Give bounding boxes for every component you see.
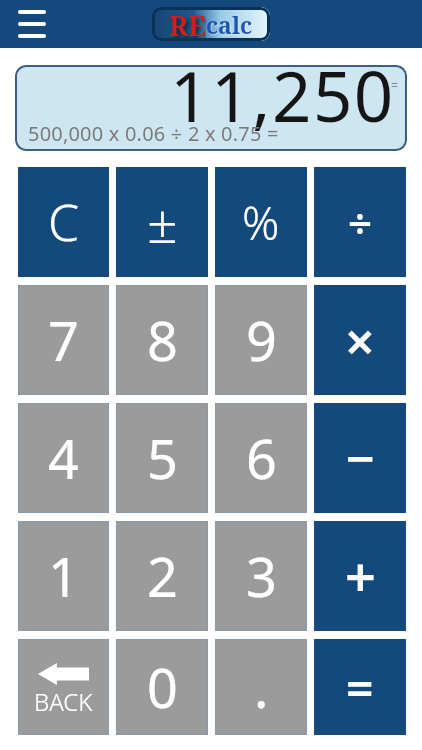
staticText: C [48, 188, 80, 256]
button[interactable]: 7 [18, 285, 109, 395]
staticText: = [346, 655, 374, 720]
staticText: calc [206, 9, 253, 40]
button[interactable]: 6 [215, 403, 307, 513]
staticText: 11,250 [170, 65, 395, 134]
staticText: . [254, 650, 269, 724]
staticText: 6 [246, 421, 277, 495]
button[interactable]: = [314, 639, 406, 735]
staticText: × [345, 305, 375, 376]
button[interactable]: BACK [18, 639, 109, 735]
button[interactable]: % [215, 167, 307, 277]
staticText: 7 [48, 303, 79, 377]
button[interactable]: ÷ [314, 167, 406, 277]
button[interactable]: 1 [18, 521, 109, 631]
button[interactable]: 4 [18, 403, 109, 513]
staticText: 5 [147, 421, 178, 495]
staticText: 1 [48, 539, 79, 613]
staticText: ÷ [348, 194, 373, 251]
staticText: − [346, 424, 375, 492]
button[interactable]: 3 [215, 521, 307, 631]
button[interactable] [18, 10, 46, 38]
staticText: = [391, 77, 398, 93]
staticText: 9 [246, 303, 277, 377]
staticText: 500,000 x 0.06 ÷ 2 x 0.75 = [28, 120, 279, 147]
staticText: ± [147, 185, 178, 259]
staticText: 2 [147, 539, 178, 613]
staticText: 8 [147, 303, 178, 377]
staticText: % [242, 191, 280, 254]
button[interactable]: 9 [215, 285, 307, 395]
staticText: BACK [34, 685, 93, 718]
button[interactable]: C [18, 167, 109, 277]
staticText: RE [169, 7, 206, 41]
button[interactable]: . [215, 639, 307, 735]
button[interactable]: − [314, 403, 406, 513]
button[interactable]: 2 [116, 521, 208, 631]
button[interactable]: RE [152, 7, 270, 41]
button[interactable]: 0 [116, 639, 208, 735]
button[interactable]: ± [116, 167, 208, 277]
button[interactable]: 5 [116, 403, 208, 513]
button[interactable]: + [314, 521, 406, 631]
staticText: 3 [246, 539, 277, 613]
button[interactable]: × [314, 285, 406, 395]
button[interactable]: 8 [116, 285, 208, 395]
staticText: 0 [147, 650, 178, 724]
staticText: 4 [48, 421, 79, 495]
staticText: + [345, 539, 376, 613]
